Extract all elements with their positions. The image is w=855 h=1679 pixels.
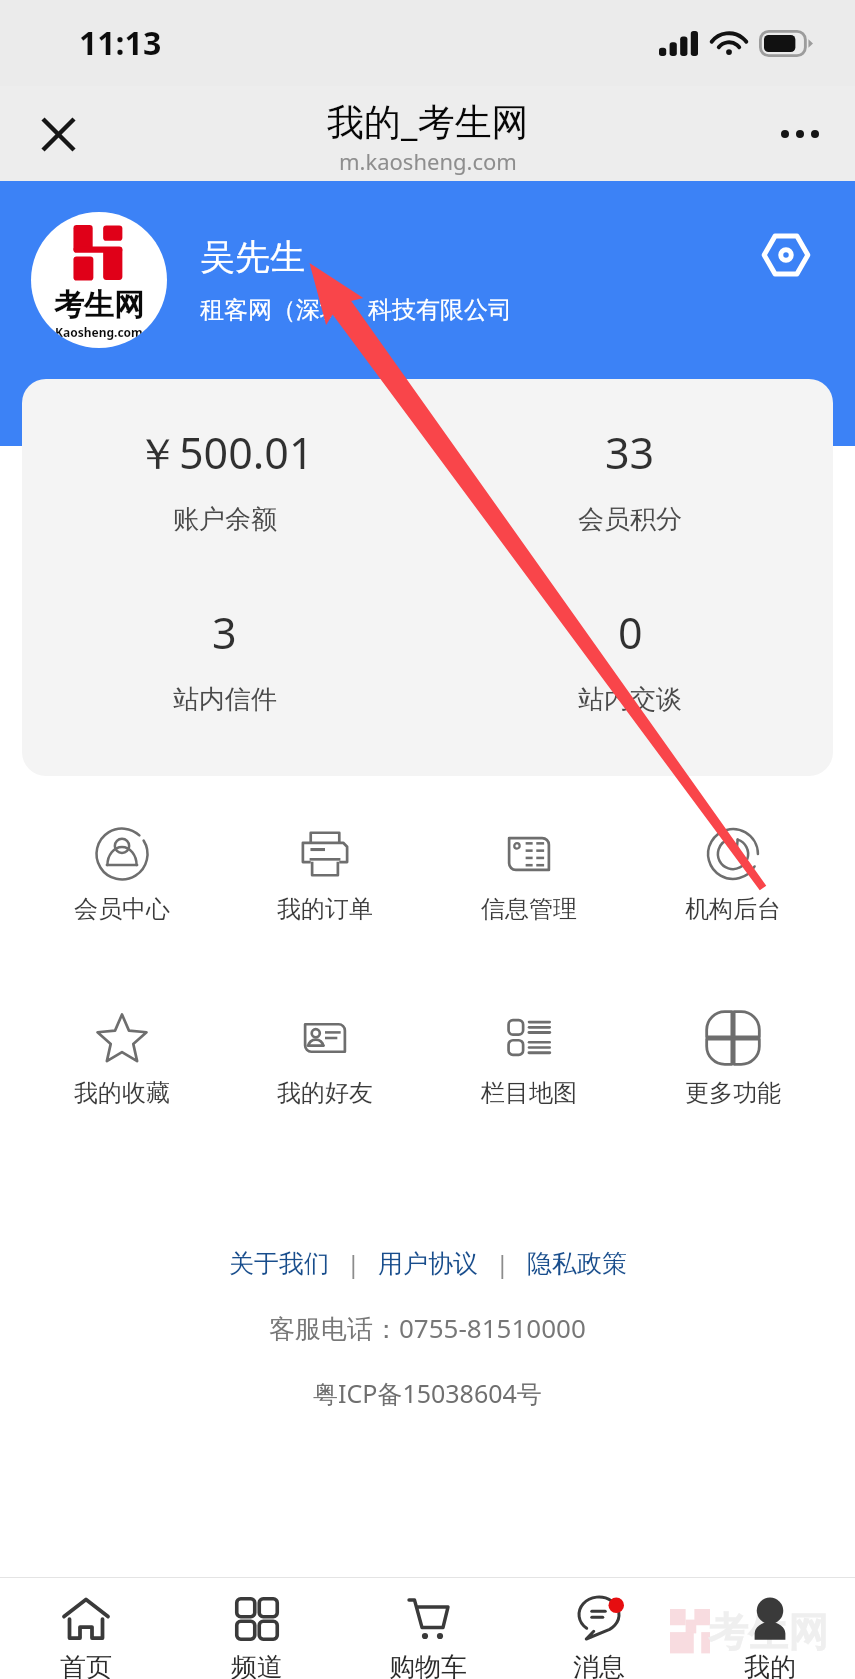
staticText: 栏目地图 xyxy=(481,1078,577,1108)
staticText: 客服电话：0755-81510000 xyxy=(269,1310,586,1346)
button[interactable]: 用户协议 xyxy=(378,1248,478,1279)
staticText: 0 xyxy=(618,603,643,662)
button[interactable]: 隐私政策 xyxy=(527,1248,627,1279)
button[interactable]: 机构后台 xyxy=(631,826,835,924)
button[interactable]: More options xyxy=(757,91,843,177)
staticText: 信息管理 xyxy=(481,894,577,924)
staticText: 33 xyxy=(605,423,655,482)
button[interactable]: 信息管理 xyxy=(427,826,631,924)
staticText: 吴先生 xyxy=(200,235,305,279)
staticText: 考生网 xyxy=(708,1607,828,1657)
staticText: 频道 xyxy=(231,1651,283,1679)
staticText: 我的订单 xyxy=(277,894,373,924)
staticText: 我的 xyxy=(744,1651,796,1679)
staticText: 首页 xyxy=(60,1651,112,1679)
staticText: 会员积分 xyxy=(578,503,682,536)
button[interactable]: 我的好友 xyxy=(223,1010,427,1108)
staticText: 租客网（深圳）科技有限公司 xyxy=(200,295,512,325)
staticText: | xyxy=(478,1248,527,1279)
staticText: | xyxy=(329,1248,378,1279)
button[interactable]: 我的订单 xyxy=(223,826,427,924)
staticText: 机构后台 xyxy=(685,894,781,924)
staticText: 我的好友 xyxy=(277,1078,373,1108)
button[interactable]: 首页 xyxy=(0,1578,171,1679)
staticText: 站内信件 xyxy=(173,683,277,716)
staticText: 11:13 xyxy=(79,21,162,65)
staticText: 更多功能 xyxy=(685,1078,781,1108)
button[interactable]: 频道 xyxy=(171,1578,342,1679)
staticText: ￥500.01 xyxy=(136,423,314,482)
button[interactable]: 更多功能 xyxy=(631,1010,835,1108)
staticText: 会员中心 xyxy=(74,894,170,924)
staticText: 3 xyxy=(212,603,237,662)
button[interactable]: 消息 xyxy=(513,1578,684,1679)
button[interactable]: ￥500.01 xyxy=(22,423,427,536)
staticText: 账户余额 xyxy=(173,503,277,536)
staticText: 我的收藏 xyxy=(74,1078,170,1108)
button[interactable]: 33 xyxy=(427,423,833,536)
staticText: 站内交谈 xyxy=(578,683,682,716)
button[interactable]: Avatar xyxy=(31,212,167,348)
button[interactable]: 会员中心 xyxy=(20,826,223,924)
staticText: Kaosheng.com xyxy=(55,324,143,340)
staticText: 消息 xyxy=(573,1651,625,1679)
button[interactable]: Settings xyxy=(755,224,817,286)
staticText: 考生网 xyxy=(54,286,144,324)
staticText: m.kaosheng.com xyxy=(339,146,517,176)
button[interactable]: 购物车 xyxy=(342,1578,513,1679)
button[interactable]: 栏目地图 xyxy=(427,1010,631,1108)
staticText: 我的_考生网 xyxy=(327,95,529,146)
button[interactable]: Close xyxy=(15,91,101,177)
button[interactable]: 我的 xyxy=(684,1578,855,1679)
staticText: 购物车 xyxy=(389,1651,467,1679)
staticText: 粤ICP备15038604号 xyxy=(313,1376,542,1410)
button[interactable]: 3 xyxy=(22,603,427,716)
button[interactable]: 0 xyxy=(427,603,833,716)
button[interactable]: 关于我们 xyxy=(229,1248,329,1279)
button[interactable]: 我的收藏 xyxy=(20,1010,223,1108)
